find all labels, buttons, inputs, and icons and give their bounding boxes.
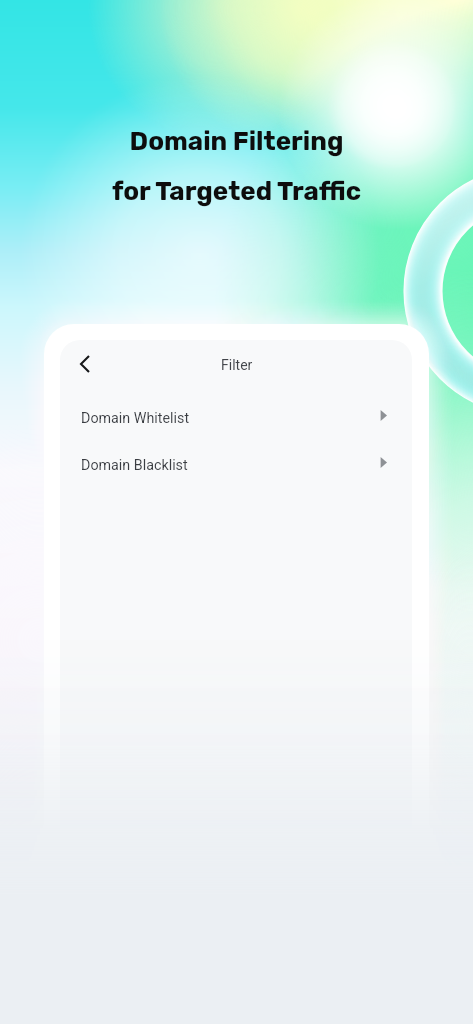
staticText: Domain Whitelist (81, 410, 190, 427)
staticText: Domain Filtering for Targeted Traffic (0, 126, 473, 206)
staticText: Filter (221, 357, 253, 373)
button[interactable]: Back (68, 347, 101, 380)
button[interactable]: Domain Whitelist (60, 405, 412, 428)
button[interactable]: Domain Blacklist (60, 452, 412, 475)
staticText: Domain Blacklist (81, 457, 188, 474)
